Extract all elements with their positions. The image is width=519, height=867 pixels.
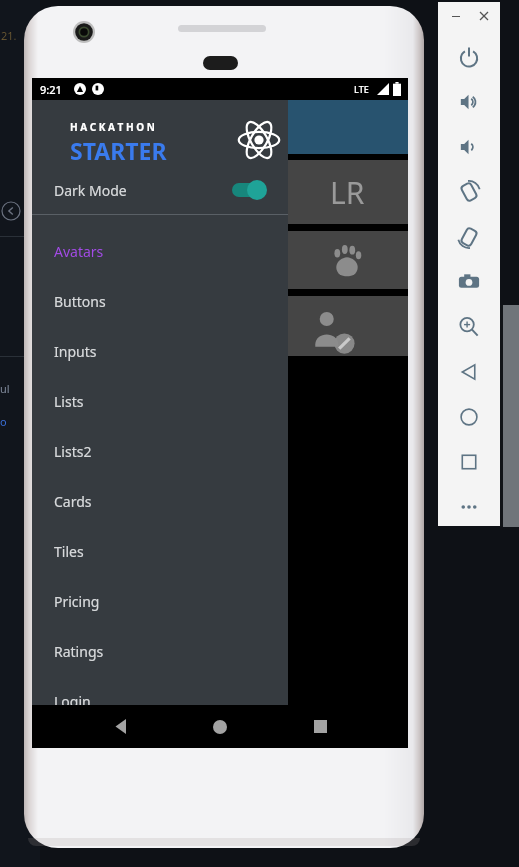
button[interactable]: Volume up bbox=[450, 83, 488, 121]
staticText: Buttons bbox=[54, 292, 106, 311]
staticText: o bbox=[0, 414, 7, 429]
button[interactable]: Collapse bbox=[0, 200, 22, 222]
button[interactable]: Lists2 bbox=[32, 426, 288, 476]
button[interactable]: Back bbox=[91, 705, 151, 748]
staticText: ul bbox=[0, 381, 10, 396]
button[interactable]: Pricing bbox=[32, 576, 288, 626]
button[interactable]: Pet avatar bbox=[286, 231, 408, 289]
staticText: 9:21 bbox=[40, 82, 62, 97]
button[interactable]: Back bbox=[450, 353, 488, 391]
button[interactable]: Volume down bbox=[450, 128, 488, 166]
button[interactable]: Minimize bbox=[446, 6, 466, 26]
button[interactable]: Take screenshot bbox=[450, 263, 488, 301]
button[interactable]: Buttons bbox=[32, 276, 288, 326]
staticText: Ratings bbox=[54, 642, 104, 661]
button[interactable]: Power bbox=[450, 38, 488, 76]
button[interactable]: Home bbox=[190, 705, 250, 748]
staticText: Lists2 bbox=[54, 442, 92, 461]
staticText: Login bbox=[54, 692, 91, 711]
staticText: Pricing bbox=[54, 592, 100, 611]
button[interactable]: Tiles bbox=[32, 526, 288, 576]
staticText: Tiles bbox=[54, 542, 84, 561]
staticText: LTE bbox=[354, 83, 369, 95]
staticText: Inputs bbox=[54, 342, 97, 361]
button[interactable]: Dark Mode bbox=[32, 170, 288, 210]
staticText: STARTER bbox=[70, 135, 167, 166]
button[interactable]: Cards bbox=[32, 476, 288, 526]
staticText: Avatars bbox=[54, 242, 104, 261]
button[interactable]: Login bbox=[32, 676, 288, 726]
button[interactable]: Edit profile avatar bbox=[286, 296, 408, 356]
button[interactable]: Avatars bbox=[32, 226, 288, 276]
button[interactable]: Lists bbox=[32, 376, 288, 426]
staticText: H A C K A T H O N bbox=[70, 120, 155, 134]
staticText: Lists bbox=[54, 392, 84, 411]
button[interactable]: Recent apps bbox=[290, 705, 350, 748]
button[interactable]: Zoom bbox=[450, 308, 488, 346]
button[interactable]: Rotate left bbox=[450, 173, 488, 211]
button[interactable]: Home bbox=[450, 398, 488, 436]
button[interactable]: Overview bbox=[450, 443, 488, 481]
staticText: Cards bbox=[54, 492, 92, 511]
staticText: LR bbox=[330, 172, 365, 213]
staticText: 21. bbox=[1, 28, 17, 43]
button[interactable]: More bbox=[450, 488, 488, 526]
button[interactable]: Inputs bbox=[32, 326, 288, 376]
button[interactable]: Rotate right bbox=[450, 218, 488, 256]
button[interactable]: LR bbox=[286, 160, 408, 224]
button[interactable]: Close bbox=[474, 6, 494, 26]
button[interactable]: Ratings bbox=[32, 626, 288, 676]
staticText: Dark Mode bbox=[54, 181, 127, 200]
